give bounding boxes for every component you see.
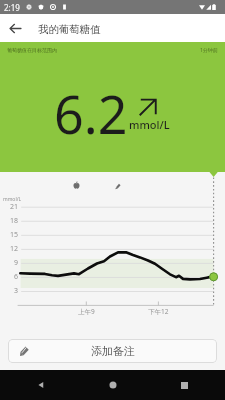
staticText: 下午12	[148, 307, 169, 316]
staticText: 9	[14, 258, 19, 268]
button[interactable]: Back	[11, 370, 71, 400]
staticText: 1分钟前	[200, 47, 218, 54]
staticText: mmol/L	[129, 117, 170, 132]
staticText: 15	[10, 230, 19, 240]
button[interactable]: 添加备注	[8, 339, 217, 363]
staticText: mmol/L	[3, 196, 22, 203]
staticText: 6.2	[54, 78, 128, 149]
staticText: 2:19	[4, 2, 20, 13]
button[interactable]: Recents	[154, 370, 214, 400]
staticText: 添加备注	[91, 344, 135, 358]
staticText: 12	[10, 244, 19, 254]
staticText: 21	[10, 202, 19, 212]
staticText: 上午9	[78, 307, 95, 316]
staticText: 18	[10, 216, 19, 226]
staticText: 我的葡萄糖值	[38, 23, 101, 36]
staticText: 葡萄糖值在目标范围内	[7, 47, 57, 53]
staticText: 3	[14, 286, 19, 296]
button[interactable]: Back	[0, 14, 30, 42]
button[interactable]: Home	[83, 370, 143, 400]
staticText: 6	[14, 272, 19, 282]
